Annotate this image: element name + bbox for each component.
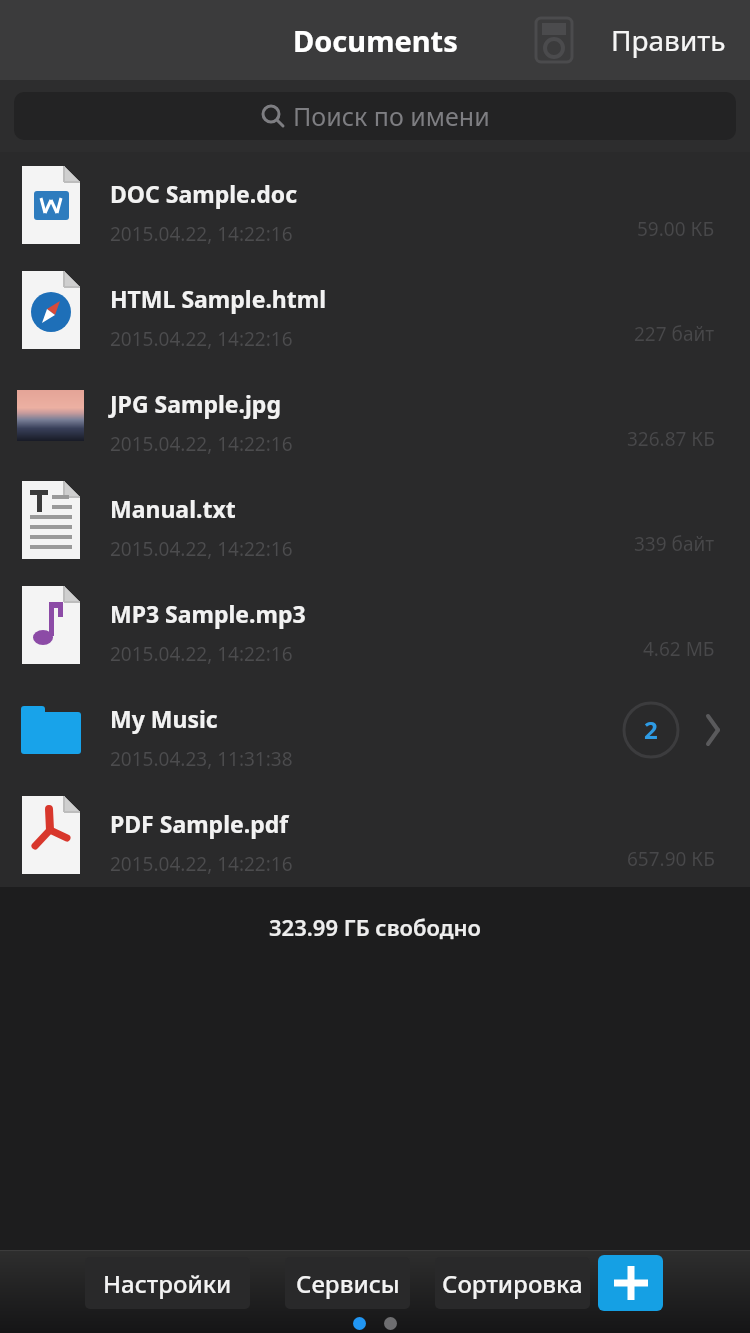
- staticText: 2015.04.23, 11:31:38: [110, 746, 293, 772]
- staticText: Поиск по имени: [293, 99, 490, 133]
- staticText: DOC Sample.doc: [110, 178, 298, 209]
- staticText: 2015.04.22, 14:22:16: [110, 431, 293, 457]
- button[interactable]: Настройки: [85, 1257, 250, 1309]
- staticText: Править: [611, 21, 726, 59]
- staticText: Manual.txt: [110, 493, 236, 524]
- staticText: Настройки: [103, 1267, 232, 1300]
- button[interactable]: MP3 Sample.mp3: [0, 572, 750, 677]
- button[interactable]: HTML Sample.html: [0, 257, 750, 362]
- staticText: JPG Sample.jpg: [110, 388, 281, 419]
- staticText: Documents: [293, 21, 458, 60]
- staticText: 4.62 МБ: [643, 636, 715, 662]
- staticText: 2015.04.22, 14:22:16: [110, 326, 293, 352]
- staticText: MP3 Sample.mp3: [110, 598, 306, 629]
- staticText: 339 байт: [634, 531, 715, 557]
- button[interactable]: JPG Sample.jpg: [0, 362, 750, 467]
- staticText: 227 байт: [634, 321, 715, 347]
- button[interactable]: PDF Sample.pdf: [0, 782, 750, 887]
- staticText: 2: [644, 713, 658, 746]
- button[interactable]: Поиск по имени: [14, 92, 736, 140]
- staticText: 59.00 КБ: [637, 216, 715, 242]
- button[interactable]: [536, 18, 572, 62]
- staticText: 323.99 ГБ свободно: [269, 912, 481, 942]
- staticText: PDF Sample.pdf: [110, 808, 289, 839]
- button[interactable]: Править: [611, 21, 726, 59]
- staticText: Сортировка: [442, 1267, 583, 1300]
- staticText: Сервисы: [296, 1267, 400, 1300]
- staticText: HTML Sample.html: [110, 283, 327, 314]
- button[interactable]: [598, 1255, 663, 1311]
- staticText: 326.87 КБ: [627, 426, 715, 452]
- staticText: 2015.04.22, 14:22:16: [110, 851, 293, 877]
- button[interactable]: Сервисы: [285, 1257, 410, 1309]
- button[interactable]: DOC Sample.doc: [0, 152, 750, 257]
- button[interactable]: Сортировка: [435, 1257, 590, 1309]
- staticText: 2015.04.22, 14:22:16: [110, 221, 293, 247]
- staticText: My Music: [110, 703, 218, 734]
- button[interactable]: My Music: [0, 677, 750, 782]
- staticText: 2015.04.22, 14:22:16: [110, 536, 293, 562]
- staticText: 2015.04.22, 14:22:16: [110, 641, 293, 667]
- staticText: 657.90 КБ: [627, 846, 715, 872]
- button[interactable]: Manual.txt: [0, 467, 750, 572]
